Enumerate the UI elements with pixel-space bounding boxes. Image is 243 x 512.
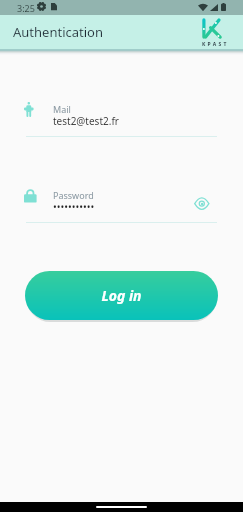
staticText: Mail bbox=[53, 103, 71, 115]
button[interactable]: Show password bbox=[187, 191, 217, 217]
staticText: Password bbox=[53, 189, 94, 201]
staticText: ••••••••••• bbox=[53, 200, 95, 214]
staticText: Authentication bbox=[13, 23, 103, 41]
staticText: 3:25 bbox=[17, 2, 35, 14]
button[interactable]: Log in bbox=[25, 271, 218, 320]
staticText: Log in bbox=[101, 286, 142, 305]
staticText: KPAST bbox=[202, 41, 229, 48]
staticText: test2@test2.fr bbox=[53, 114, 119, 128]
